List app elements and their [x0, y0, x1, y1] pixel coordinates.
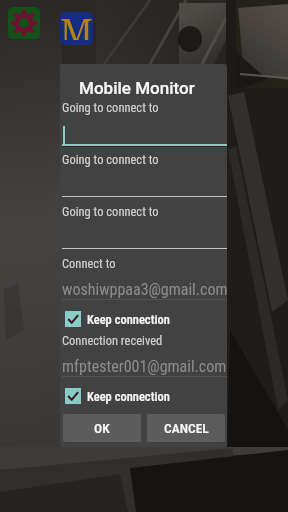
staticText: OK [94, 420, 110, 436]
staticText: Keep connection [87, 312, 170, 327]
staticText: CANCEL [164, 420, 209, 436]
staticText: Keep connection [87, 389, 170, 404]
staticText: M [60, 12, 93, 40]
button[interactable]: Settings [8, 7, 40, 39]
staticText: mfptester001@gmail.com [62, 357, 227, 376]
staticText: Going to connect to [62, 100, 159, 115]
staticText: woshiwppaa3@gmail.com [62, 280, 227, 299]
button[interactable]: OK [63, 414, 141, 442]
staticText: Going to connect to [62, 204, 159, 219]
button[interactable]: CANCEL [147, 414, 225, 442]
staticText: Connection received [62, 333, 163, 348]
staticText: Going to connect to [62, 152, 159, 167]
button[interactable]: Keep connection [65, 388, 225, 404]
staticText: Connect to [62, 256, 116, 271]
button[interactable]: Keep connection [65, 311, 225, 327]
staticText: Mobile Monitor [79, 78, 195, 98]
button[interactable]: Mobile Monitor [60, 12, 93, 45]
